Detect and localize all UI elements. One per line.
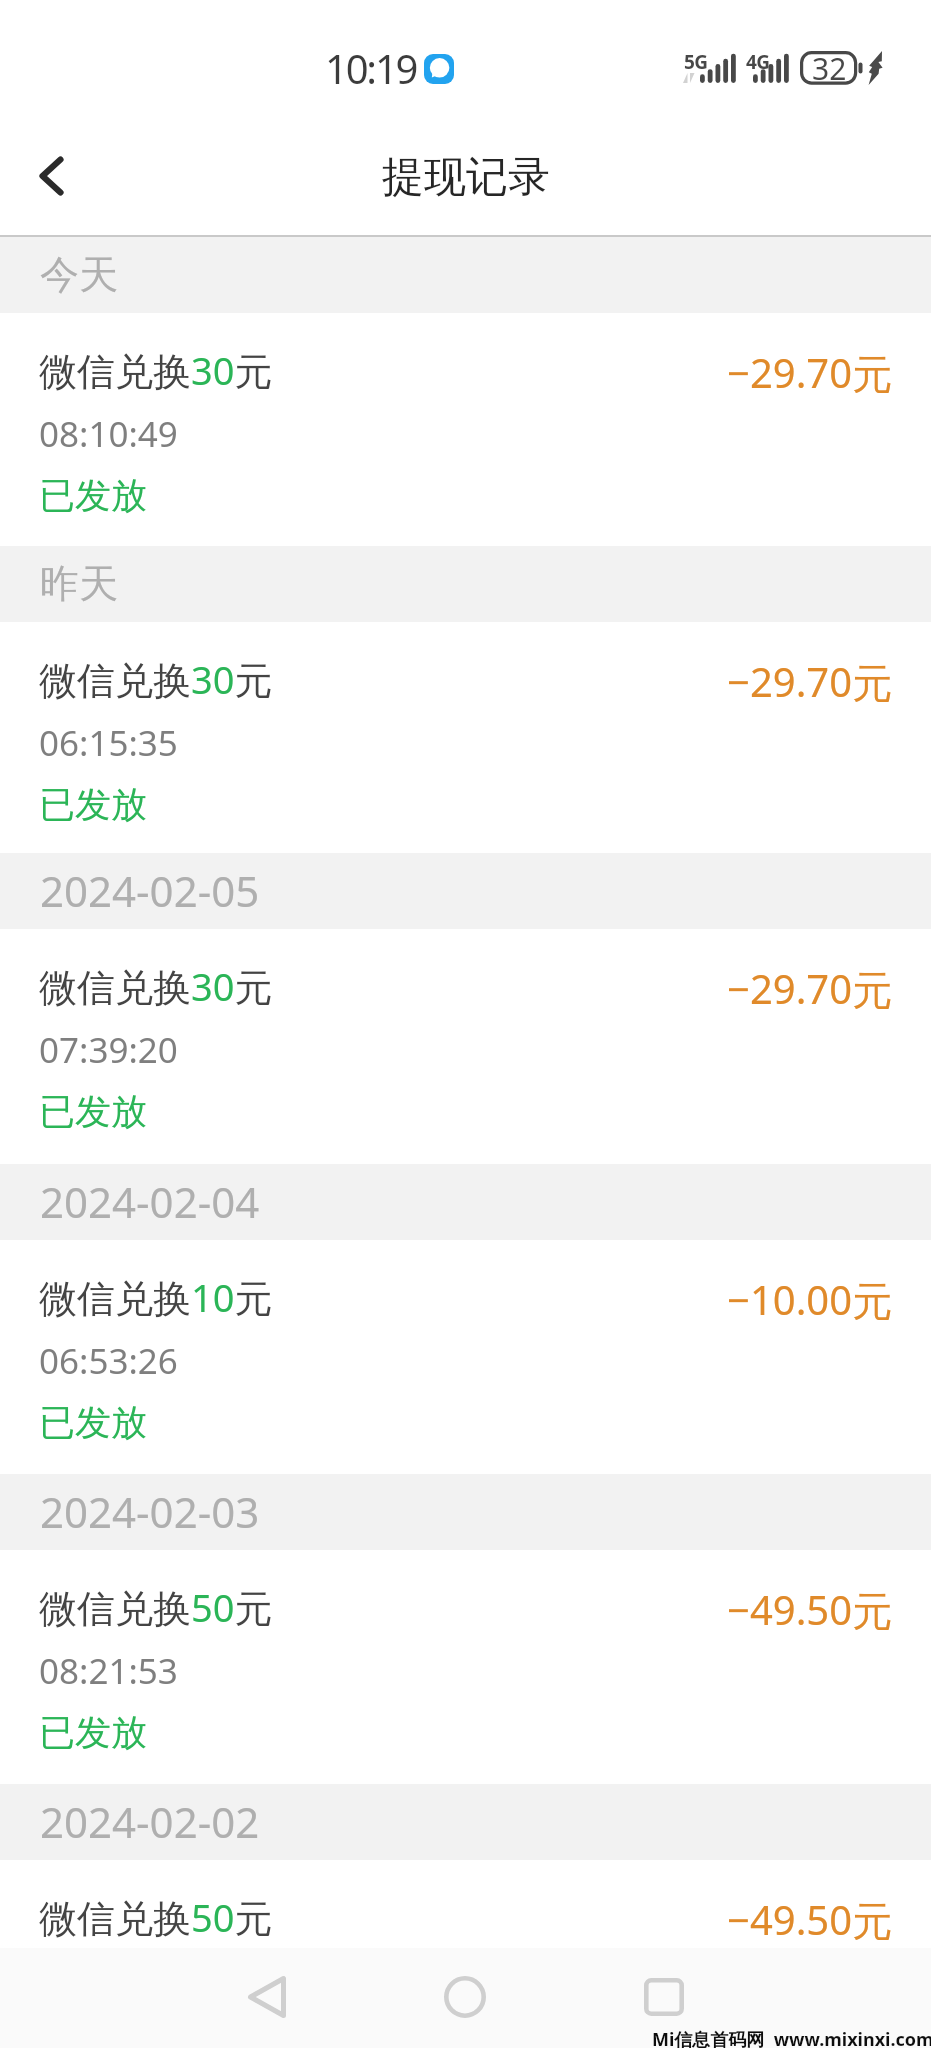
staticText: 今天 [40,250,118,299]
staticText: 已发放 [39,782,147,827]
staticText: 32 [812,48,847,89]
staticText: 提现记录 [382,151,550,204]
staticText: −49.50元 [727,1582,893,1637]
staticText: 08:10:49 [39,410,178,458]
staticText: 4G [746,49,770,75]
staticText: 06:53:26 [39,1337,178,1385]
button[interactable]: Back [0,110,104,235]
staticText: 08:21:53 [39,1647,178,1695]
staticText: 微信兑换30元 [39,653,273,705]
staticText: −29.70元 [727,654,893,709]
staticText: 已发放 [39,473,147,518]
staticText: 微信兑换50元 [39,1891,273,1943]
staticText: 已发放 [39,1710,147,1755]
staticText: 2024-02-05 [40,862,260,919]
button[interactable]: 微信兑换30元 [0,313,931,546]
staticText: 2024-02-02 [40,1793,260,1850]
staticText: −29.70元 [727,961,893,1016]
staticText: 微信兑换30元 [39,960,273,1012]
button[interactable]: 微信兑换50元 [0,1550,931,1784]
staticText: 2024-02-04 [40,1173,260,1230]
button[interactable]: 微信兑换30元 [0,929,931,1164]
button[interactable]: 微信兑换10元 [0,1240,931,1474]
button[interactable]: 微信兑换50元 [0,1860,931,2048]
staticText: 06:15:35 [39,719,178,767]
staticText: 微信兑换50元 [39,1581,273,1633]
staticText: 已发放 [39,1400,147,1445]
staticText: Mi信息首码网 www.mixinxi.com [652,2027,931,2048]
staticText: 已发放 [39,1089,147,1134]
staticText: −10.00元 [727,1272,893,1327]
staticText: 07:39:20 [39,1026,178,1074]
staticText: 2024-02-03 [40,1483,260,1540]
button[interactable]: 微信兑换30元 [0,622,931,853]
button[interactable]: Recents [566,1948,762,2048]
staticText: −29.70元 [727,345,893,400]
staticText: 5G [684,49,708,75]
button[interactable]: Home [367,1948,563,2048]
button[interactable]: Back [169,1948,365,2048]
staticText: −49.50元 [727,1892,893,1947]
staticText: 微信兑换10元 [39,1271,273,1323]
staticText: 10:19 [325,41,417,95]
staticText: 昨天 [40,559,118,608]
staticText: 微信兑换30元 [39,344,273,396]
